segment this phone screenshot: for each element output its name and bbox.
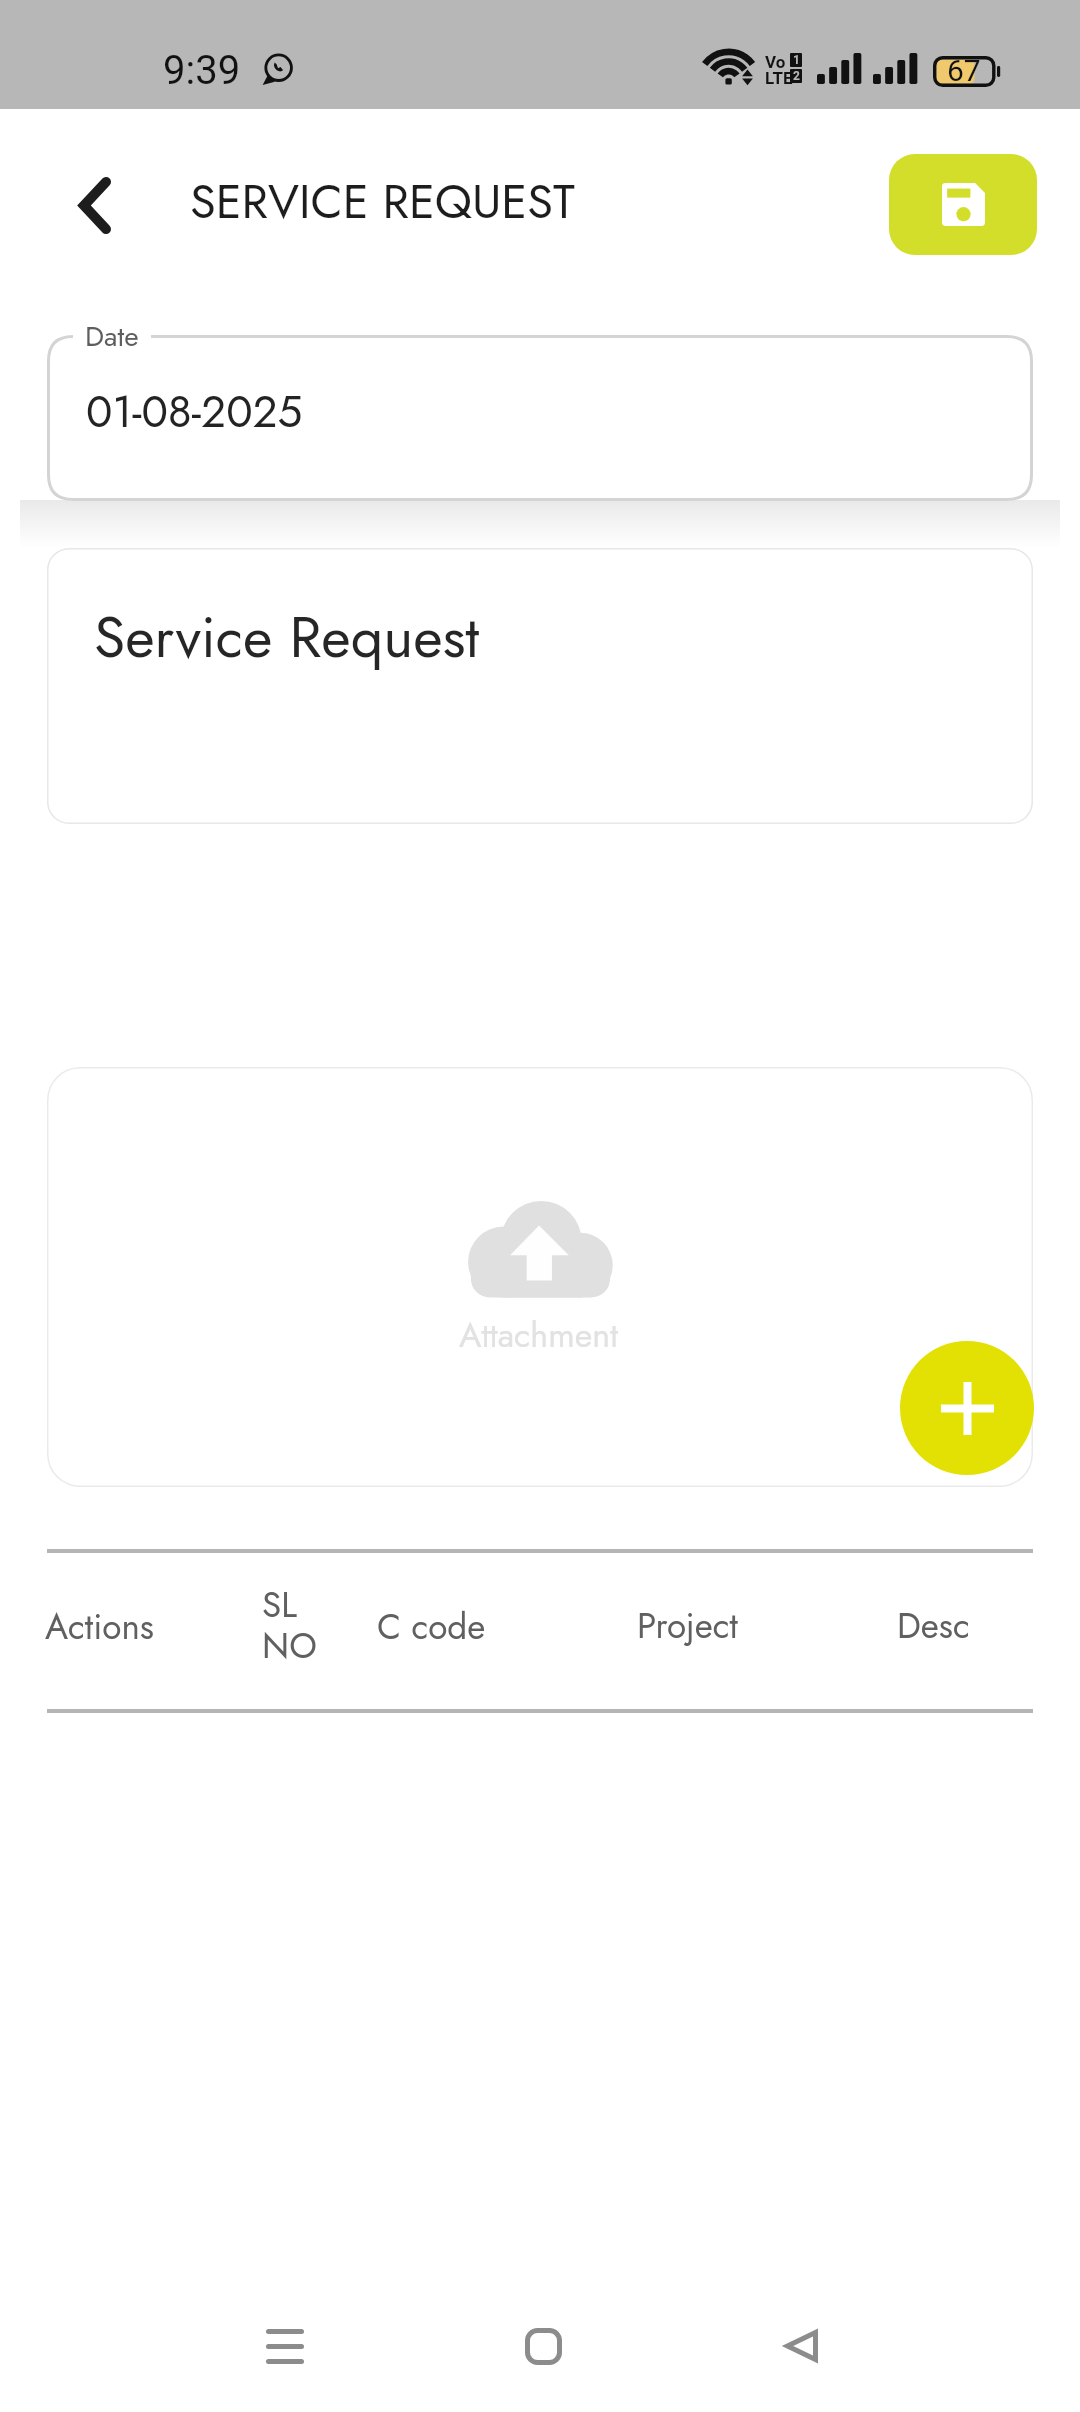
button[interactable]: Home xyxy=(483,2290,603,2402)
button[interactable] xyxy=(47,335,1033,501)
staticText: SL xyxy=(262,1580,297,1631)
staticText: Date xyxy=(85,316,139,356)
staticText: Vo xyxy=(765,52,786,72)
staticText: Attachment xyxy=(459,1311,619,1360)
staticText: Desc xyxy=(897,1601,970,1652)
button[interactable]: Back xyxy=(54,164,136,246)
button[interactable]: Back xyxy=(741,2290,861,2402)
staticText: Service Request xyxy=(94,596,480,678)
button[interactable]: Attachment xyxy=(47,1067,1033,1487)
staticText: LTE xyxy=(765,68,793,88)
button[interactable]: Service Request xyxy=(47,548,1033,824)
staticText: 01-08-2025 xyxy=(86,380,303,444)
button[interactable]: Save xyxy=(889,154,1037,255)
button[interactable]: Add attachment xyxy=(900,1341,1034,1475)
staticText: SERVICE REQUEST xyxy=(190,168,575,236)
staticText: Project xyxy=(637,1601,738,1652)
staticText: Actions xyxy=(45,1602,154,1653)
staticText: 1 xyxy=(793,53,800,67)
staticText: C code xyxy=(377,1602,486,1653)
button[interactable]: Recent apps xyxy=(225,2290,345,2402)
staticText: 2 xyxy=(793,69,800,83)
staticText: 9:39 xyxy=(163,47,241,94)
staticText: 67 xyxy=(947,53,981,88)
staticText: NO xyxy=(262,1621,317,1672)
